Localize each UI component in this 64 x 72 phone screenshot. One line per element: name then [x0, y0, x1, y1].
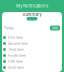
- staticText: My Notifications: [16, 3, 48, 9]
- staticText: Add: [52, 26, 58, 30]
- staticText: Fourth item: [8, 53, 26, 58]
- button[interactable]: Second item: [2, 40, 62, 46]
- staticText: Summary: [22, 12, 41, 17]
- button[interactable]: Add: [50, 25, 60, 30]
- button[interactable]: Fifth item: [2, 58, 62, 64]
- staticText: Second item: [8, 41, 28, 46]
- staticText: Third item: [8, 47, 24, 52]
- staticText: Sixth item: [8, 65, 24, 70]
- button[interactable]: First item: [2, 34, 62, 40]
- staticText: First item: [8, 35, 23, 40]
- button[interactable]: Fourth item: [2, 52, 62, 58]
- button[interactable]: Sixth item: [2, 64, 62, 70]
- staticText: Today: [4, 26, 14, 30]
- staticText: Fifth item: [8, 59, 23, 64]
- button[interactable]: Third item: [2, 46, 62, 52]
